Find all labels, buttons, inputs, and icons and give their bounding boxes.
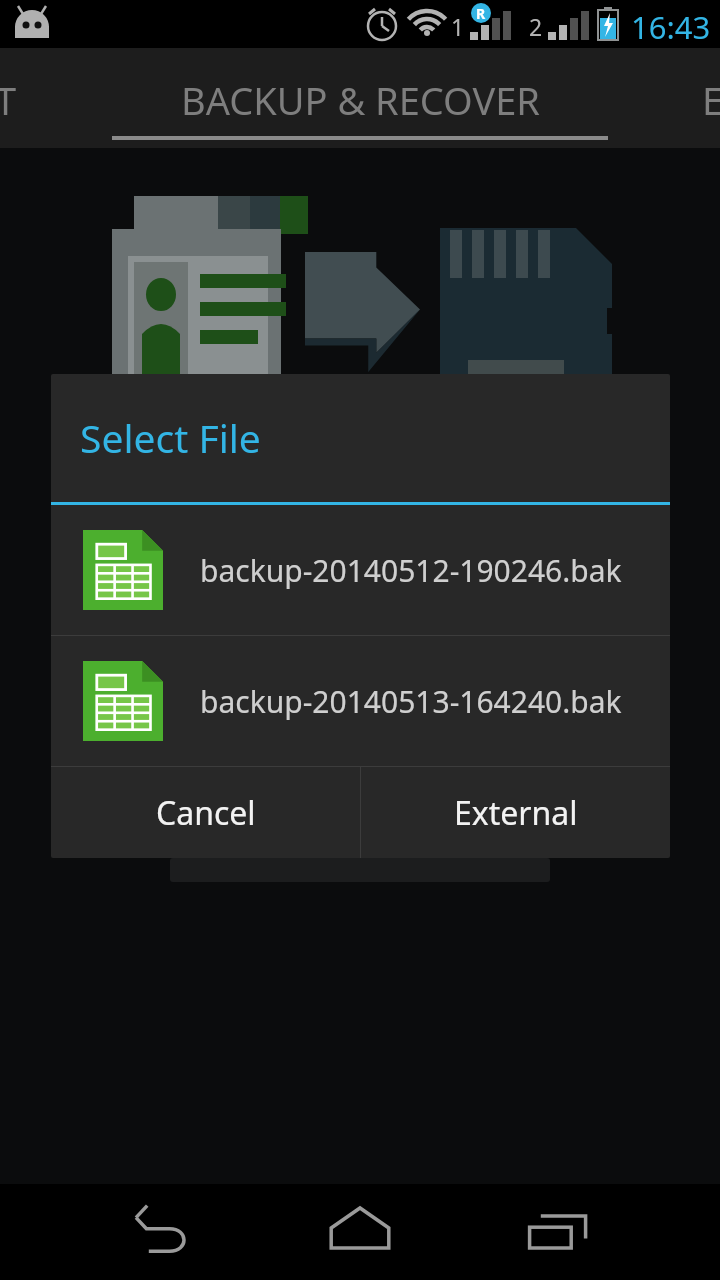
button[interactable]: Cancel xyxy=(51,767,360,858)
staticText: 2 xyxy=(529,11,543,42)
staticText: backup-20140513-164240.bak xyxy=(200,681,622,722)
button[interactable]: External xyxy=(361,767,670,858)
staticText: 16:43 xyxy=(631,6,711,48)
staticText: External xyxy=(454,791,578,835)
button[interactable]: BACKUP & RECOVER xyxy=(0,48,720,148)
staticText: Select File xyxy=(80,411,261,464)
button[interactable]: Home xyxy=(320,1192,400,1272)
button[interactable]: backup-20140512-190246.bak xyxy=(51,505,670,635)
staticText: Cancel xyxy=(156,791,256,835)
button[interactable]: backup-20140513-164240.bak xyxy=(51,636,670,766)
button[interactable]: Recent apps xyxy=(520,1192,600,1272)
staticText: BACKUP & RECOVER xyxy=(181,74,540,126)
staticText: 1 xyxy=(451,11,465,42)
button[interactable]: Back xyxy=(120,1192,200,1272)
staticText: T xyxy=(0,74,17,126)
staticText: E xyxy=(702,74,720,126)
staticText: backup-20140512-190246.bak xyxy=(200,550,622,591)
staticText: R xyxy=(476,4,486,23)
